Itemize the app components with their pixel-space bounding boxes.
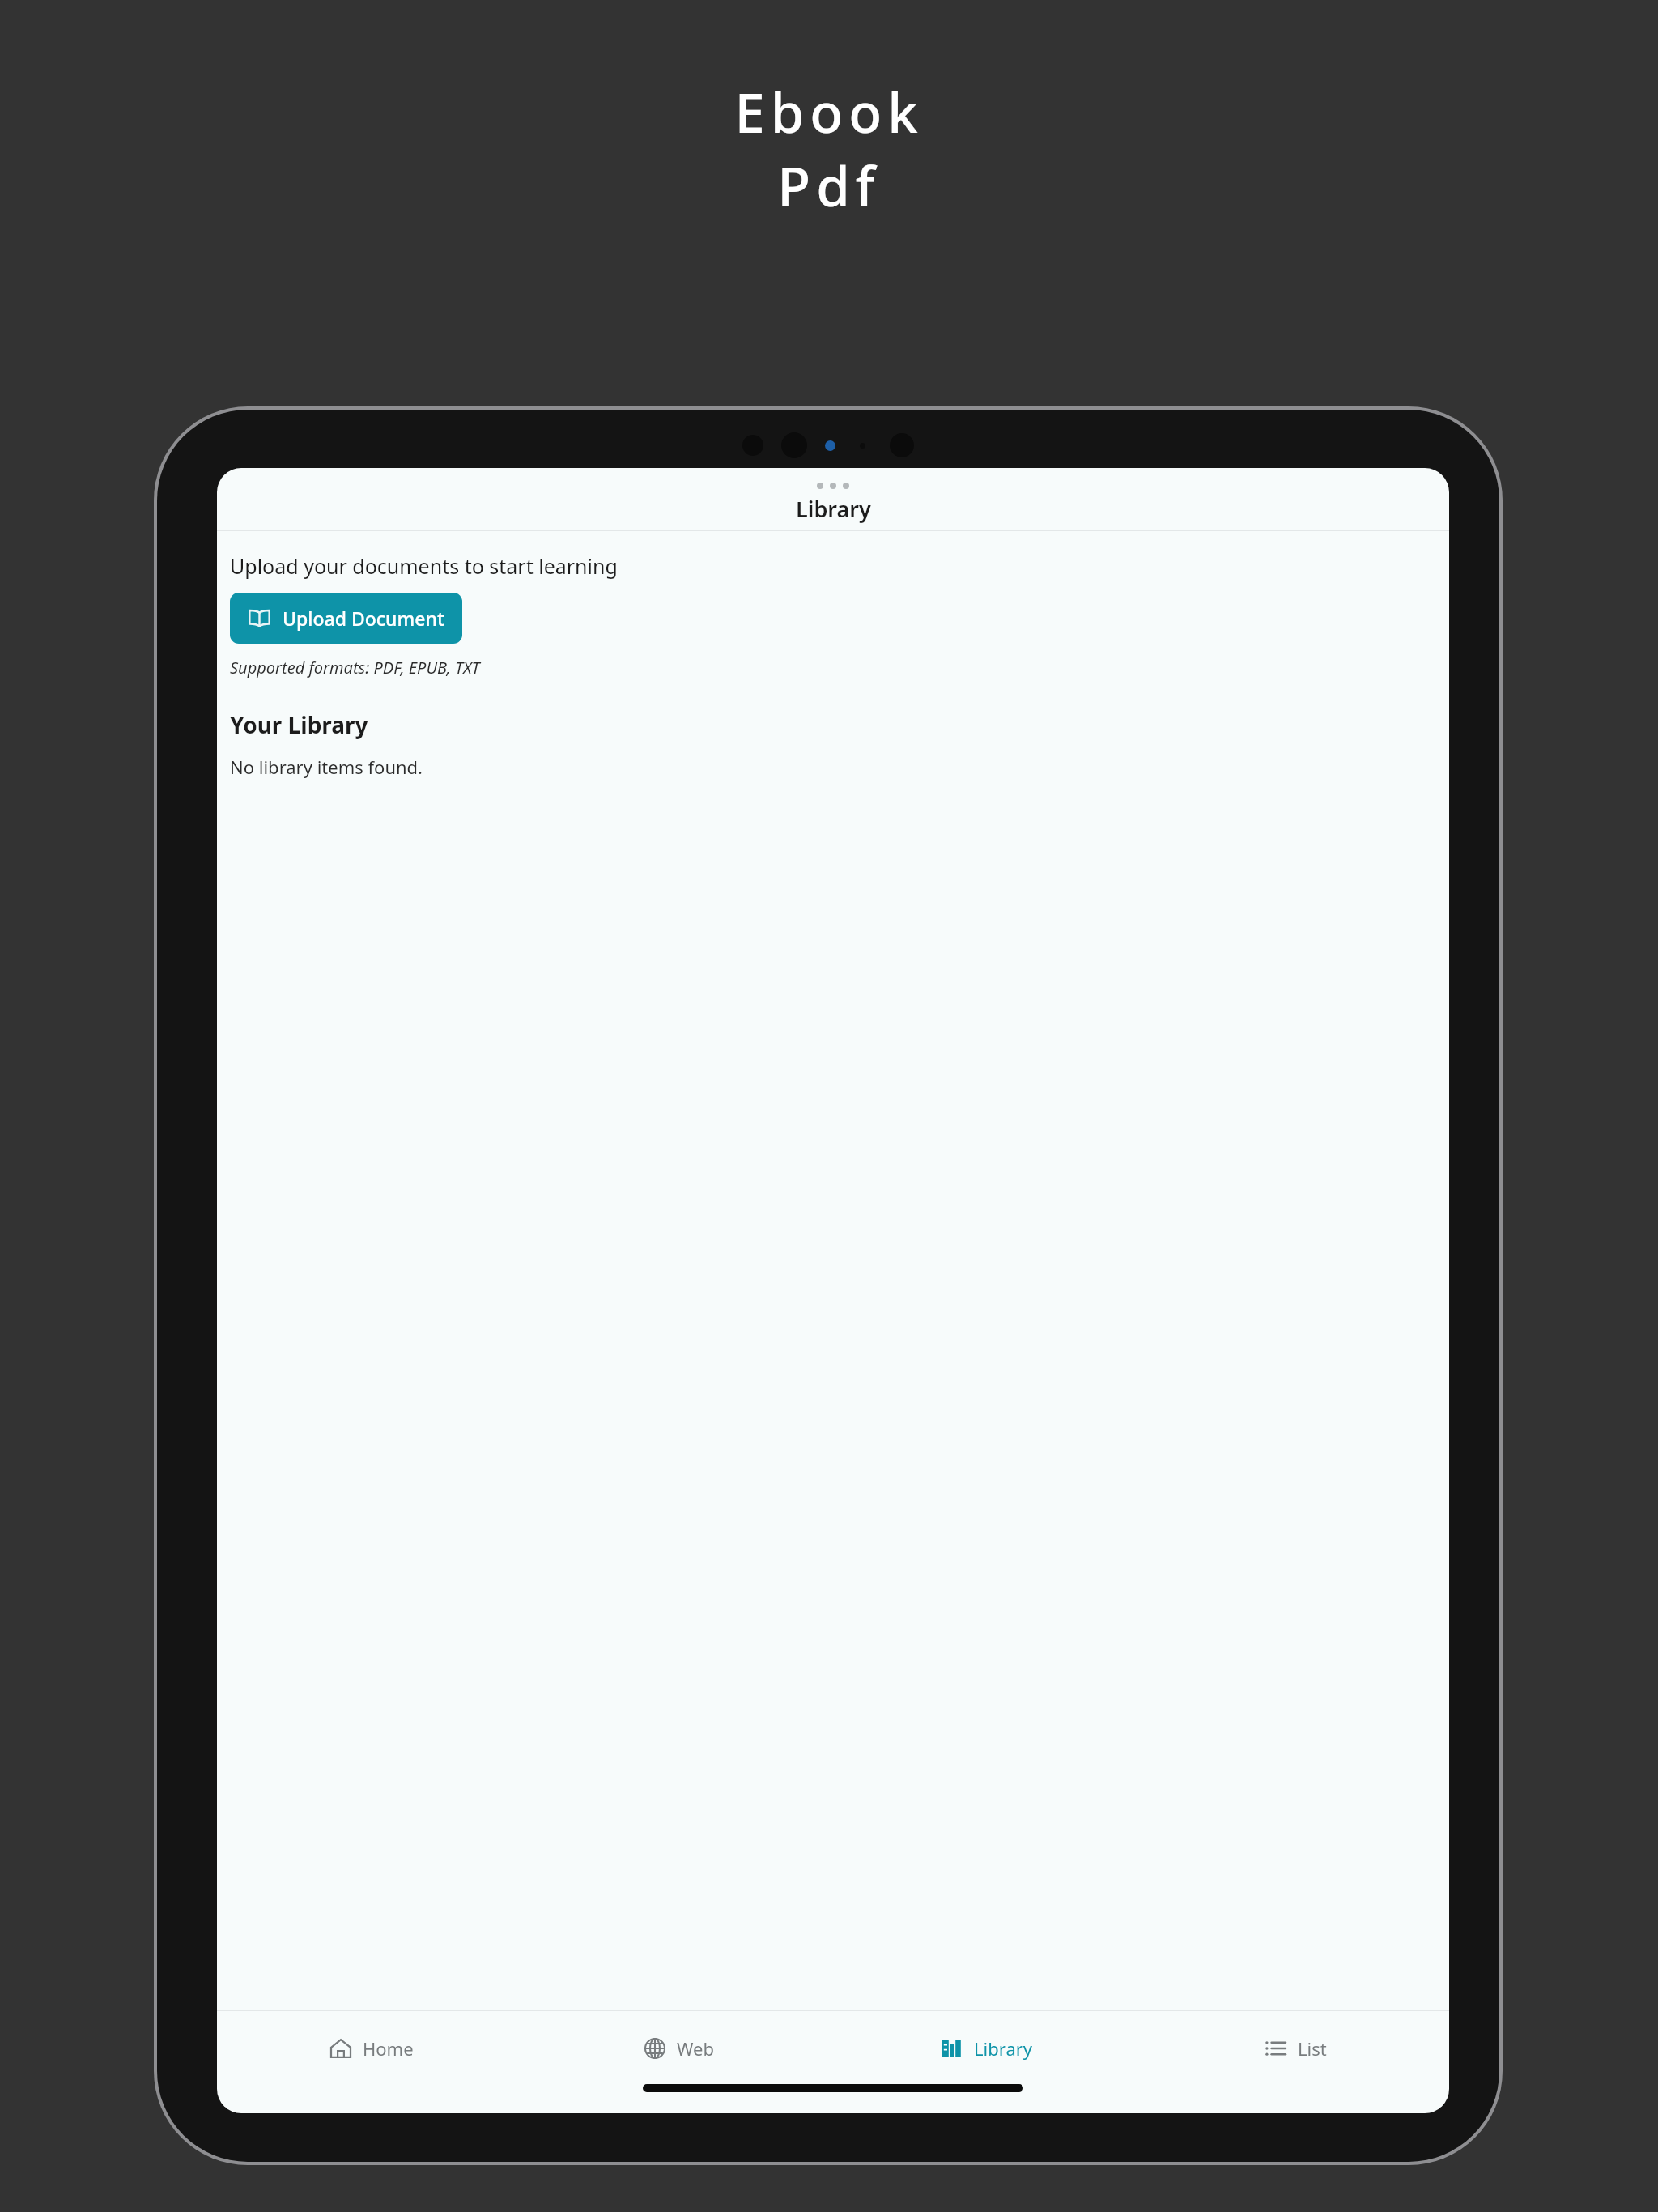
staticText: Your Library: [230, 709, 368, 740]
staticText: Upload your documents to start learning: [230, 552, 618, 580]
other: Library: [940, 2036, 964, 2061]
button[interactable]: List: [1141, 2011, 1449, 2086]
staticText: Library: [974, 2036, 1033, 2061]
other: Web: [643, 2036, 667, 2061]
staticText: Upload Document: [283, 606, 444, 631]
staticText: Ebook: [734, 74, 924, 148]
staticText: Library: [796, 494, 871, 524]
button[interactable]: Web: [525, 2011, 832, 2086]
button[interactable]: Home: [217, 2011, 525, 2086]
button[interactable]: Library: [832, 2011, 1141, 2086]
other: List: [1264, 2036, 1288, 2061]
staticText: No library items found.: [230, 755, 423, 779]
staticText: List: [1298, 2036, 1327, 2061]
staticText: Home: [363, 2036, 414, 2061]
button[interactable]: Upload Document: [230, 593, 462, 644]
staticText: Pdf: [777, 148, 881, 222]
staticText: Supported formats: PDF, EPUB, TXT: [230, 657, 480, 678]
staticText: Web: [677, 2036, 714, 2061]
other: Home: [329, 2036, 353, 2061]
